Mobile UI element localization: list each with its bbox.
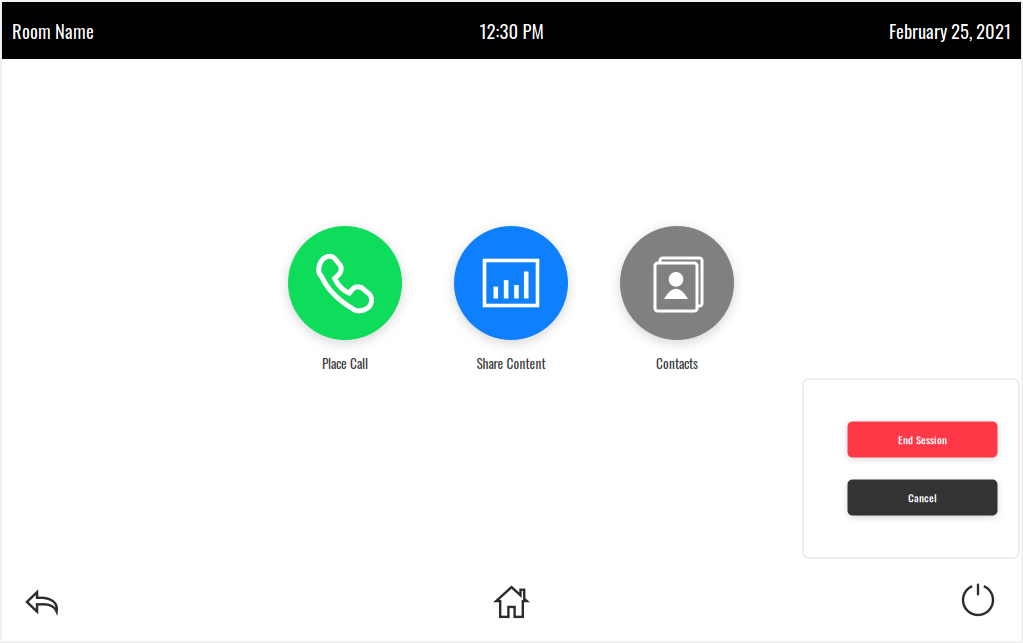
button[interactable]: End Session — [847, 421, 997, 457]
button[interactable]: Place Call — [262, 226, 428, 370]
button[interactable]: Share Content — [428, 226, 594, 370]
staticText: Place Call — [322, 353, 368, 373]
staticText: 12:30 PM — [479, 17, 543, 44]
staticText: Share Content — [476, 353, 545, 373]
staticText: Contacts — [656, 353, 698, 373]
staticText: End Session — [898, 432, 947, 447]
button[interactable]: Home — [469, 569, 553, 635]
button[interactable]: Contacts — [594, 226, 760, 370]
button[interactable]: Back — [0, 569, 84, 635]
button[interactable]: Power — [936, 569, 1020, 635]
staticText: Room Name — [12, 17, 94, 44]
button[interactable]: Cancel — [847, 479, 997, 515]
staticText: February 25, 2021 — [889, 17, 1011, 44]
staticText: Cancel — [908, 490, 937, 505]
